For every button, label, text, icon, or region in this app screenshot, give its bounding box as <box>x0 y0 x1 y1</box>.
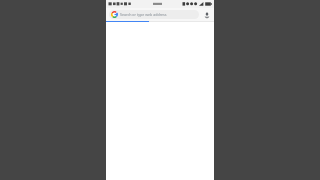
button[interactable]: Voice search <box>202 10 211 19</box>
button[interactable]: Search or type web address <box>109 10 199 19</box>
staticText: Search or type web address <box>120 12 197 17</box>
